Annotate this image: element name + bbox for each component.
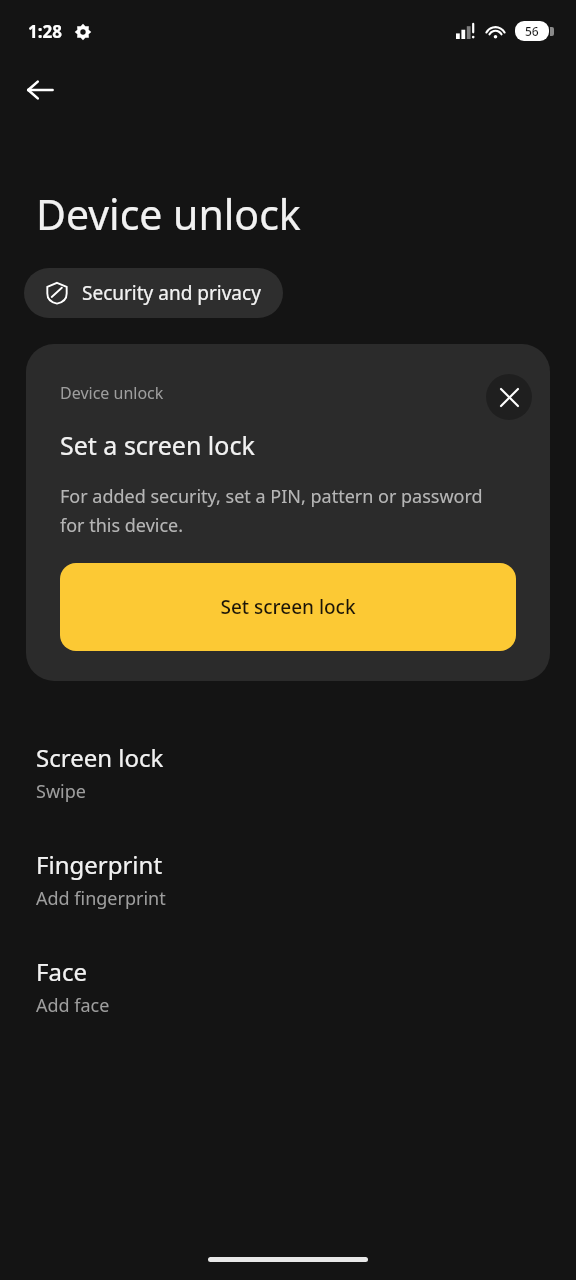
staticText: For added security, set a PIN, pattern o… (60, 484, 492, 537)
staticText: Screen lock (36, 741, 164, 774)
staticText: Add face (36, 993, 110, 1018)
staticText: Face (36, 955, 87, 988)
button[interactable]: Security and privacy (24, 268, 283, 318)
staticText: Device unlock (36, 186, 301, 242)
staticText: Device unlock (60, 382, 486, 404)
staticText: Swipe (36, 779, 86, 804)
button[interactable]: Set screen lock (60, 563, 516, 651)
staticText: Set screen lock (220, 594, 356, 620)
staticText: Set a screen lock (60, 428, 255, 462)
button[interactable]: Face (0, 951, 576, 1022)
staticText: Security and privacy (82, 280, 261, 306)
button[interactable]: Dismiss (486, 374, 532, 420)
button[interactable]: Screen lock (0, 737, 576, 808)
staticText: Add fingerprint (36, 886, 166, 911)
staticText: 1:28 (28, 20, 62, 43)
button[interactable]: Back (12, 62, 68, 118)
staticText: Fingerprint (36, 848, 163, 881)
staticText: 56 (525, 23, 539, 39)
button[interactable]: Fingerprint (0, 844, 576, 915)
